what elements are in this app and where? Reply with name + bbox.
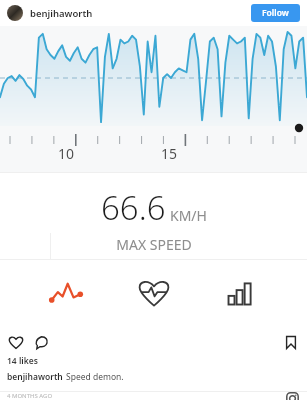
button[interactable]: 14 likes xyxy=(7,355,38,367)
button[interactable]: benjihaworth xyxy=(30,7,93,20)
button[interactable]: Profile photo xyxy=(7,5,23,21)
button[interactable]: Heart rate xyxy=(132,271,176,315)
button[interactable]: Speed chart xyxy=(44,271,88,315)
button[interactable]: Follow xyxy=(251,4,300,22)
staticText: KM/H xyxy=(170,206,207,225)
staticText: Speed demon. xyxy=(66,371,124,383)
staticText: benjihaworth xyxy=(30,7,93,20)
button[interactable]: Statistics xyxy=(219,271,263,315)
button[interactable]: Like xyxy=(6,332,26,352)
staticText: 66.6 xyxy=(101,185,166,230)
button[interactable]: benjihaworth xyxy=(7,371,63,383)
staticText: 4 MONTHS AGO xyxy=(7,392,53,400)
staticText: 15 xyxy=(161,144,178,163)
button[interactable]: Open in Instagram xyxy=(284,392,300,400)
staticText: Follow xyxy=(262,7,289,19)
button[interactable]: Save xyxy=(281,332,301,352)
staticText: 10 xyxy=(58,144,75,163)
button[interactable]: Comment xyxy=(31,332,51,352)
staticText: MAX SPEED xyxy=(116,235,192,254)
staticText: 14 likes xyxy=(7,355,38,367)
